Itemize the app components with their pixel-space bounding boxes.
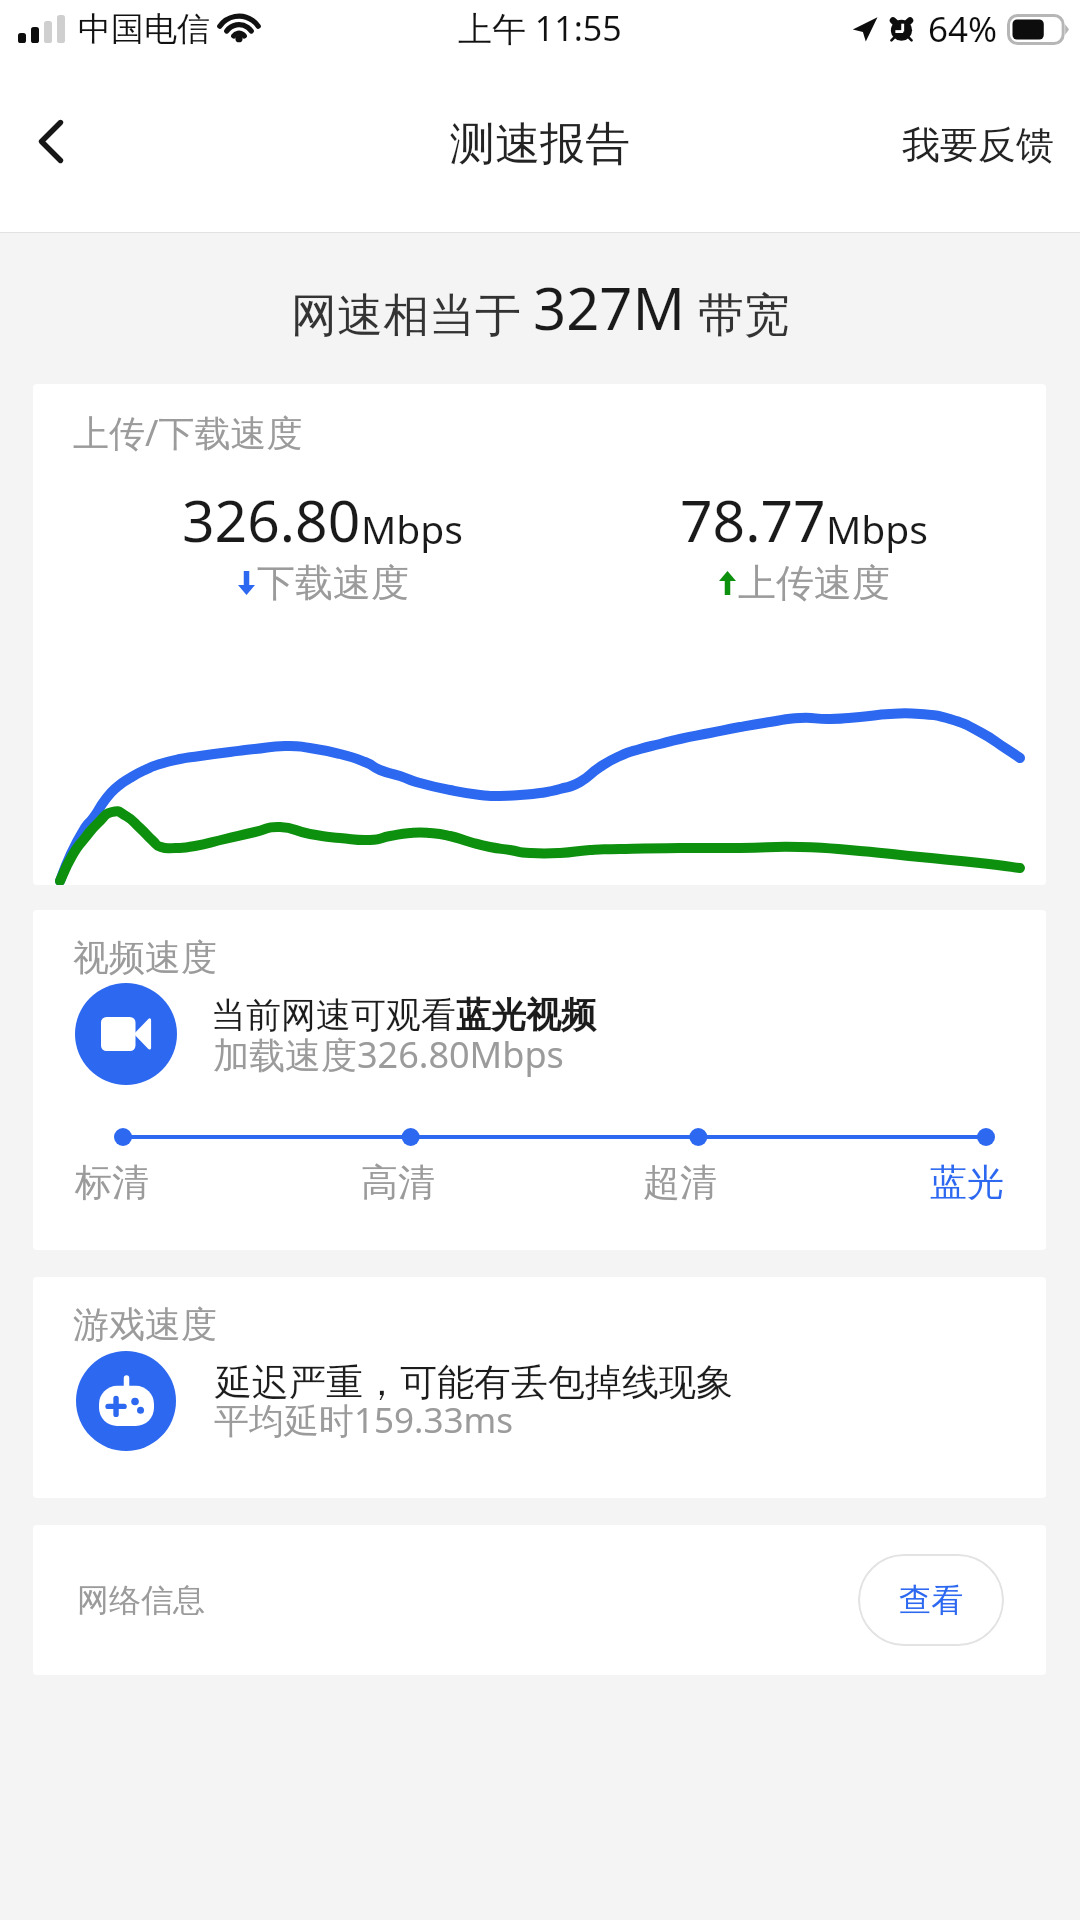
button[interactable]: 蓝光 [923,1154,1011,1210]
staticText: 当前网速可观看 [211,993,456,1037]
staticText: 中国电信 [78,8,210,50]
staticText: 网络信息 [77,1580,205,1620]
staticText: 高清 [361,1159,435,1206]
button[interactable]: 我要反馈 [890,56,1080,233]
staticText: 上传/下载速度 [73,408,303,457]
staticText: Mbps [361,502,464,555]
staticText: 视频速度 [73,935,217,980]
staticText: 延迟严重，可能有丢包掉线现象 [215,1359,733,1406]
staticText: 测速报告 [450,116,630,173]
staticText: 游戏速度 [73,1302,217,1347]
button[interactable]: 标清 [68,1154,156,1210]
staticText: 上午 11:55 [458,5,622,51]
staticText: 蓝光 [930,1159,1004,1206]
staticText: 标清 [75,1159,149,1206]
staticText: 蓝光视频 [456,993,596,1037]
button[interactable]: 视频速度 [33,910,1046,1250]
button[interactable]: 游戏速度 [33,1277,1046,1498]
button[interactable]: 网络信息 [33,1525,1046,1675]
staticText: 上传速度 [738,559,890,607]
staticText: Mbps [826,502,929,555]
staticText: 查看 [899,1580,963,1620]
button[interactable]: 查看 [858,1554,1004,1646]
staticText: 下载速度 [257,559,409,607]
staticText: 网速相当于 [291,282,533,345]
staticText: 平均延时159.33ms [214,1396,513,1444]
staticText: 超清 [643,1159,717,1206]
staticText: 带宽 [686,282,790,345]
button[interactable]: 超清 [636,1154,724,1210]
button[interactable]: Back [0,56,105,233]
staticText: 326.80 [182,481,361,559]
staticText: 我要反馈 [902,121,1054,169]
staticText: 加载速度326.80Mbps [213,1030,564,1079]
button[interactable]: 上传/下载速度 [33,384,1046,885]
button[interactable]: 高清 [354,1154,442,1210]
staticText: 78.77 [680,481,826,559]
staticText: 327M [533,268,686,347]
staticText: 64% [928,5,998,53]
